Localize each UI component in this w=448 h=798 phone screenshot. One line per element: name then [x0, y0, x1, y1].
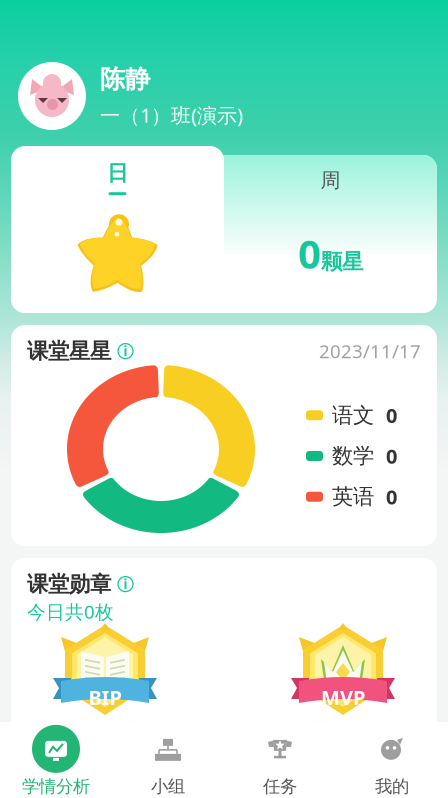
button[interactable]: 任务 [224, 723, 336, 797]
button[interactable]: 学情分析 [0, 723, 112, 797]
staticText: 周 [320, 168, 340, 193]
button[interactable]: BIP [30, 623, 180, 739]
staticText: 认真听讲 [73, 719, 137, 739]
button[interactable]: 小组 [112, 723, 224, 797]
staticText: 0 [298, 227, 321, 280]
staticText: MVP [321, 684, 365, 711]
staticText: 2023/11/17 [319, 339, 421, 363]
staticText: i [123, 342, 127, 360]
staticText: i [123, 575, 127, 593]
staticText: 日 [107, 160, 128, 186]
staticText: 0 [386, 402, 397, 429]
staticText: 英语 [332, 484, 374, 510]
staticText: 课堂星星 [27, 338, 111, 364]
staticText: 语文 [332, 402, 374, 428]
button[interactable]: MVP [268, 623, 418, 739]
staticText: 今日共0枚 [27, 599, 114, 624]
button[interactable]: 说明 [111, 577, 133, 592]
staticText: 颗星 [321, 248, 363, 275]
staticText: 学情分析 [22, 776, 90, 797]
staticText: 0 [386, 483, 397, 510]
button[interactable]: 头像 [18, 62, 86, 130]
staticText: BIP [88, 684, 121, 711]
staticText: 我的 [375, 776, 409, 797]
staticText: 课堂勋章 [27, 571, 111, 597]
button[interactable]: 说明 [111, 344, 133, 359]
staticText: 0 [386, 443, 397, 469]
staticText: 数学 [332, 443, 374, 469]
staticText: 小组 [151, 776, 185, 797]
button[interactable]: 我的 [336, 723, 448, 797]
button[interactable]: 日 [11, 146, 224, 313]
staticText: 任务 [263, 776, 297, 797]
staticText: 陈静 [100, 64, 150, 95]
staticText: 一（1）班(演示) [100, 102, 243, 128]
button[interactable]: 周 [224, 146, 437, 313]
